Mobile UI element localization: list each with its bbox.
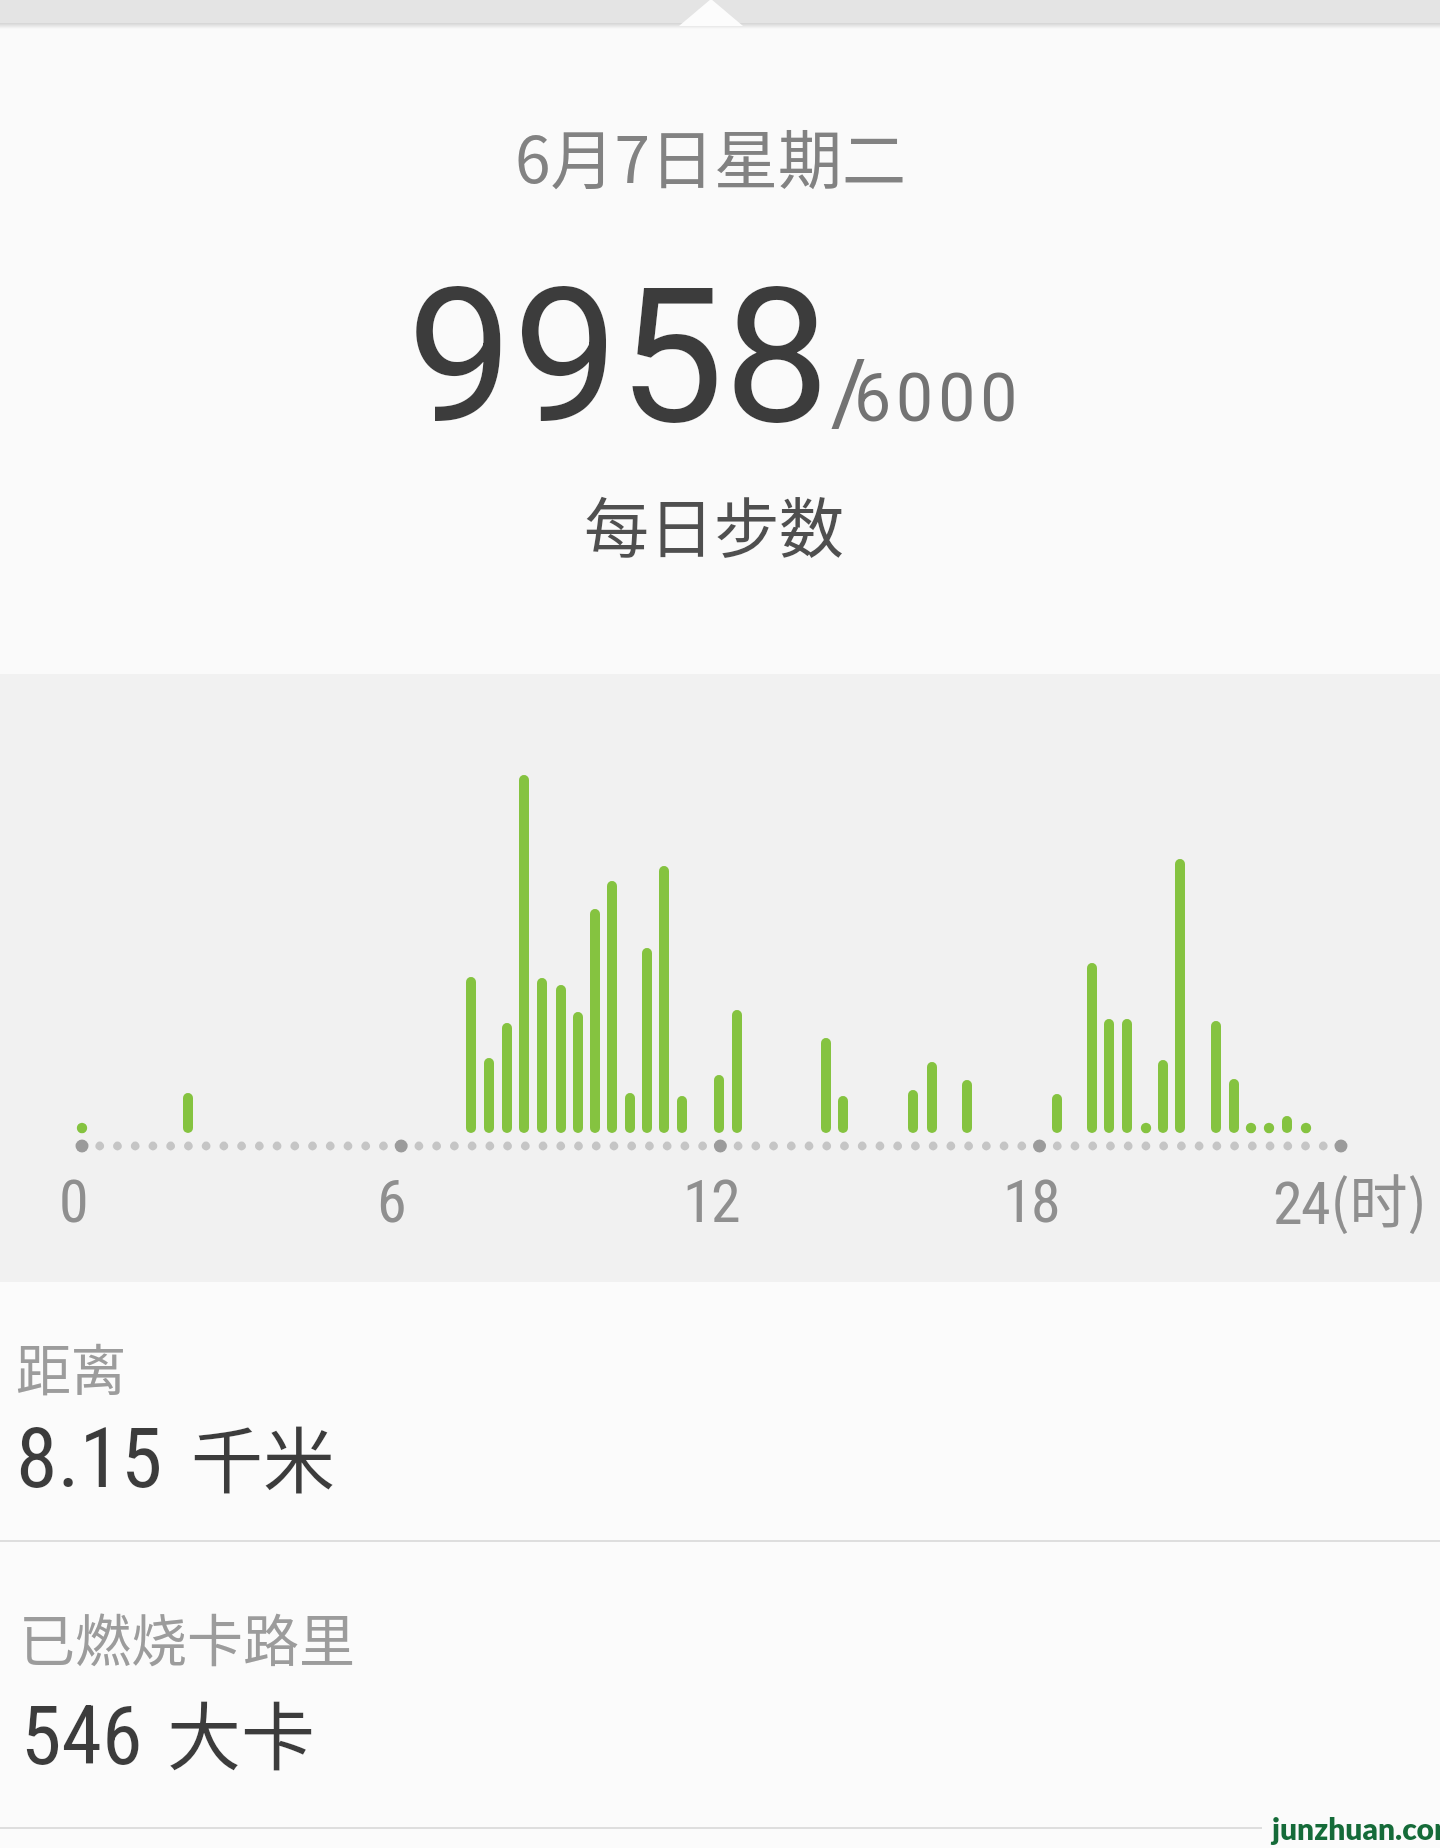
- staticText: 6000: [854, 360, 1023, 437]
- button[interactable]: [0, 0, 1440, 23]
- staticText: 大卡: [167, 1678, 315, 1785]
- staticText: 24: [1273, 1168, 1330, 1238]
- staticText: 18: [1003, 1166, 1060, 1236]
- staticText: 8.15: [16, 1409, 163, 1507]
- button[interactable]: 已燃烧卡路里: [0, 1542, 1440, 1827]
- staticText: 0: [59, 1166, 88, 1236]
- staticText: 546: [21, 1688, 143, 1784]
- staticText: 6月7日星期二: [515, 109, 907, 202]
- staticText: (时): [1330, 1156, 1428, 1240]
- staticText: 12: [683, 1166, 740, 1236]
- staticText: junzhuan.com: [1272, 1810, 1440, 1846]
- button[interactable]: 距离: [0, 1282, 1440, 1541]
- staticText: 已燃烧卡路里: [19, 1596, 355, 1677]
- staticText: 9958: [407, 247, 830, 467]
- staticText: 6: [377, 1166, 406, 1236]
- staticText: 距离: [16, 1326, 127, 1406]
- staticText: 每日步数: [584, 477, 845, 571]
- staticText: 千米: [191, 1403, 336, 1507]
